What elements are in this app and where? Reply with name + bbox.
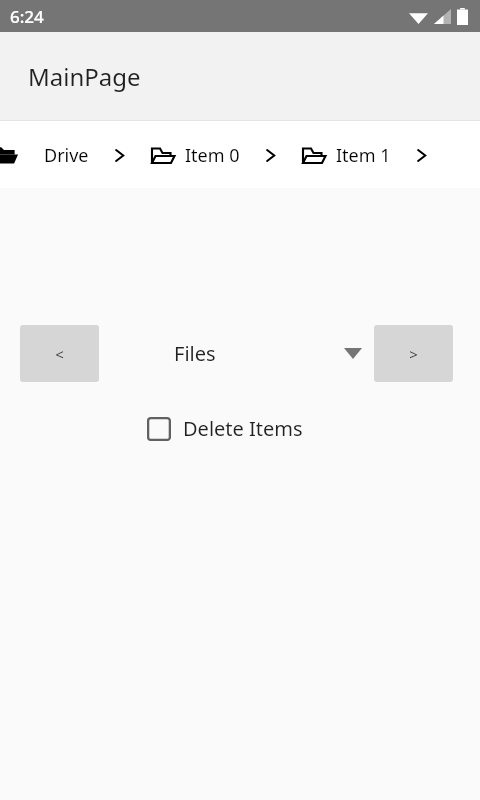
button[interactable]: Next <box>374 325 453 382</box>
staticText: < <box>55 344 64 364</box>
button[interactable]: Delete Items <box>147 415 303 442</box>
button[interactable]: Item 1 <box>301 143 391 168</box>
button[interactable]: Files <box>147 324 372 382</box>
staticText: > <box>409 344 418 364</box>
staticText: 6:24 <box>10 5 44 28</box>
staticText: Delete Items <box>183 415 303 442</box>
button[interactable]: Item 0 <box>150 143 240 168</box>
button[interactable]: Drive root folder <box>0 141 22 169</box>
button[interactable]: Drive <box>44 143 89 168</box>
button[interactable]: Previous <box>20 325 99 382</box>
staticText: MainPage <box>28 60 141 93</box>
staticText: Files <box>174 340 216 367</box>
staticText: Item 1 <box>336 143 391 168</box>
staticText: Item 0 <box>185 143 240 168</box>
